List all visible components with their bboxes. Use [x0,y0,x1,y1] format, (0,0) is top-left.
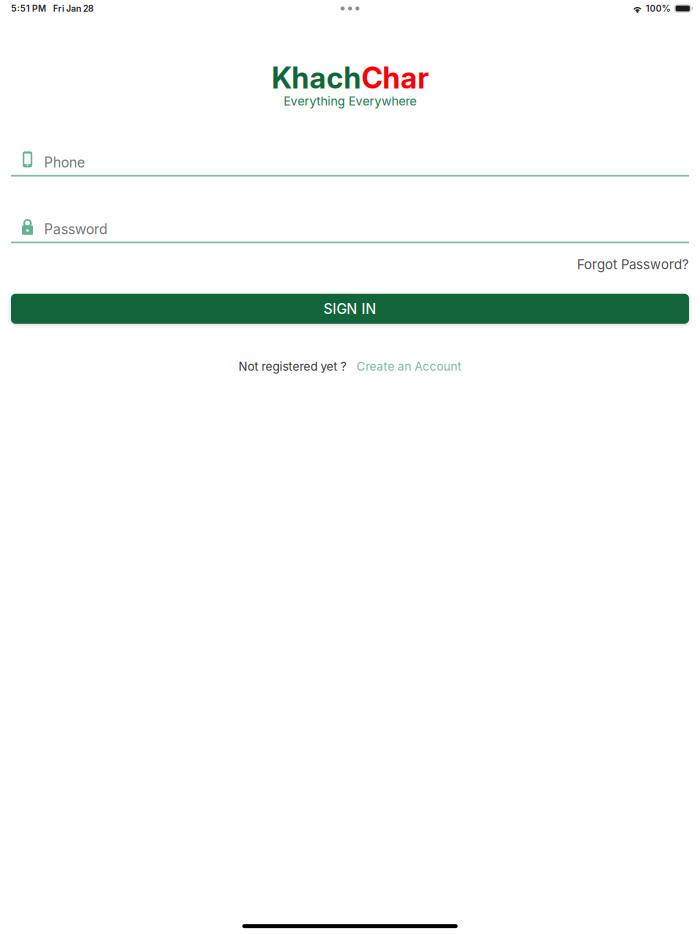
staticText: Fri Jan 28 [53,3,94,14]
button[interactable]: Create an Account [356,360,461,372]
button[interactable]: SIGN IN [11,294,689,324]
staticText: Create an Account [356,359,461,373]
staticText: 5:51 PM [11,3,46,14]
staticText: 100% [646,3,671,14]
staticText: Forgot Password? [577,256,689,272]
staticText: Char [361,60,428,96]
staticText: Password [44,221,107,237]
staticText: Phone [44,154,85,171]
staticText: SIGN IN [323,300,376,317]
staticText: Everything Everywhere [283,94,416,108]
staticText: Khach [271,60,361,96]
staticText: Not registered yet ? [238,359,346,373]
button[interactable]: Forgot Password? [577,257,689,271]
